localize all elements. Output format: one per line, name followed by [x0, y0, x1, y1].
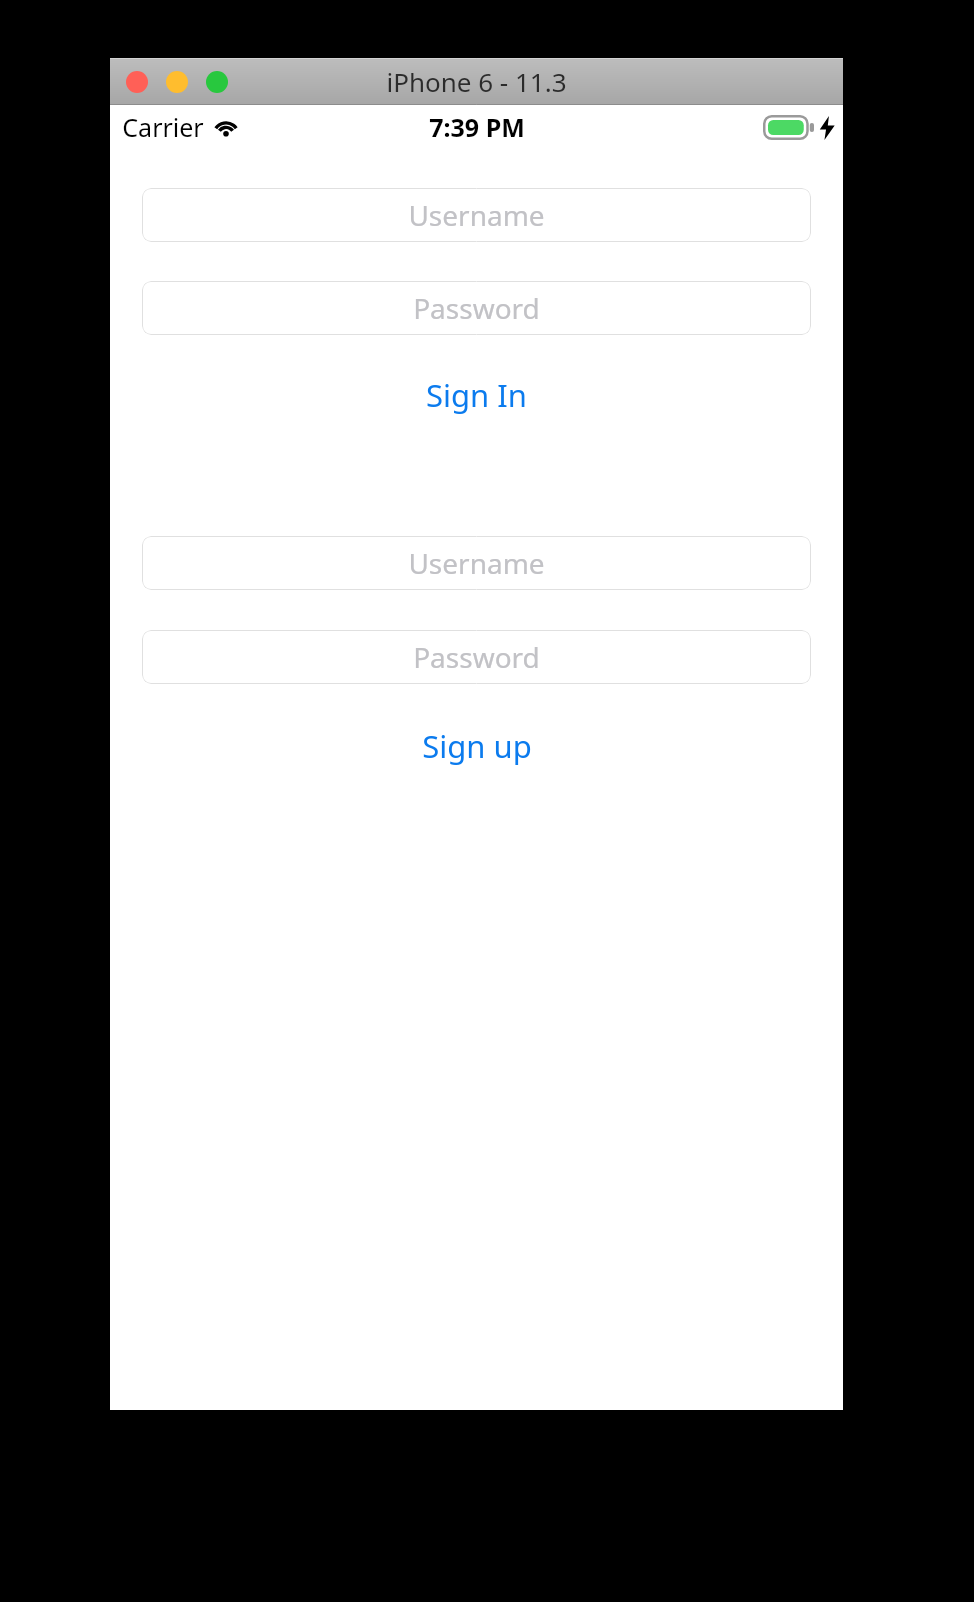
- other: Battery charging: [763, 115, 815, 140]
- button[interactable]: Username: [142, 188, 811, 242]
- button[interactable]: Minimise: [166, 71, 188, 93]
- button[interactable]: Sign In: [110, 372, 843, 418]
- button[interactable]: Username: [142, 536, 811, 590]
- button[interactable]: Password: [142, 630, 811, 684]
- staticText: Sign up: [422, 725, 532, 767]
- staticText: 7:39 PM: [429, 110, 525, 144]
- staticText: Password: [413, 638, 540, 676]
- button[interactable]: Password: [142, 281, 811, 335]
- other: Wi-Fi: [213, 117, 239, 137]
- staticText: Username: [408, 544, 545, 582]
- button[interactable]: Close: [126, 71, 148, 93]
- staticText: Carrier: [122, 110, 204, 144]
- staticText: iPhone 6 - 11.3: [386, 64, 567, 99]
- button[interactable]: Sign up: [110, 723, 843, 769]
- staticText: Username: [408, 196, 545, 234]
- staticText: Sign In: [426, 374, 527, 416]
- button[interactable]: Zoom: [206, 71, 228, 93]
- staticText: Password: [413, 289, 540, 327]
